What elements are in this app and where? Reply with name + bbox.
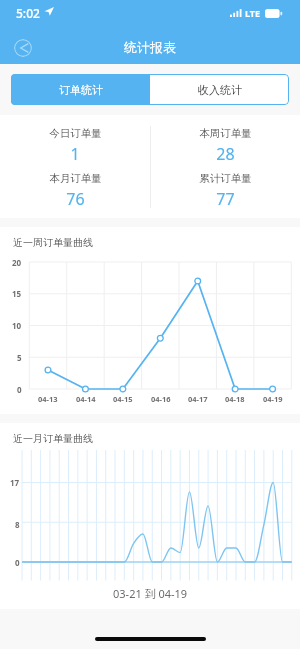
staticText: 10 — [12, 320, 22, 331]
staticText: 5 — [17, 352, 22, 363]
staticText: 04-18 — [225, 394, 245, 404]
button[interactable]: 收入统计 — [150, 74, 289, 105]
staticText: 04-14 — [76, 394, 96, 404]
staticText: 04-16 — [151, 394, 171, 404]
staticText: 统计报表 — [124, 39, 176, 55]
staticText: 1 — [70, 143, 80, 165]
staticText: 今日订单量 — [49, 127, 102, 140]
staticText: 04-17 — [188, 394, 208, 404]
staticText: 17 — [10, 477, 20, 488]
staticText: 04-19 — [263, 394, 283, 404]
staticText: 订单统计 — [59, 83, 103, 97]
button[interactable]: 本周订单量 — [150, 123, 300, 169]
staticText: 本月订单量 — [49, 172, 102, 185]
staticText: 8 — [15, 519, 20, 530]
staticText: 累计订单量 — [199, 172, 252, 185]
button[interactable]: 累计订单量 — [150, 168, 300, 214]
staticText: 04-13 — [38, 394, 58, 404]
staticText: 03-21 到 04-19 — [113, 586, 188, 601]
staticText: 28 — [216, 143, 235, 165]
staticText: 04-15 — [113, 394, 133, 404]
staticText: 76 — [66, 188, 85, 210]
staticText: LTE — [245, 7, 261, 19]
staticText: 5:02 — [16, 5, 40, 21]
staticText: 本周订单量 — [199, 127, 252, 140]
button[interactable]: 本月订单量 — [0, 168, 150, 214]
staticText: 15 — [12, 288, 22, 299]
staticText: 0 — [17, 384, 22, 395]
staticText: 20 — [12, 257, 22, 268]
button[interactable]: 订单统计 — [11, 74, 150, 105]
staticText: 近一周订单量曲线 — [13, 236, 93, 249]
staticText: 收入统计 — [198, 83, 242, 97]
button[interactable]: Back — [14, 39, 32, 57]
staticText: 77 — [216, 188, 235, 210]
staticText: 0 — [15, 557, 20, 568]
button[interactable]: 今日订单量 — [0, 123, 150, 169]
staticText: 近一月订单量曲线 — [13, 432, 93, 445]
